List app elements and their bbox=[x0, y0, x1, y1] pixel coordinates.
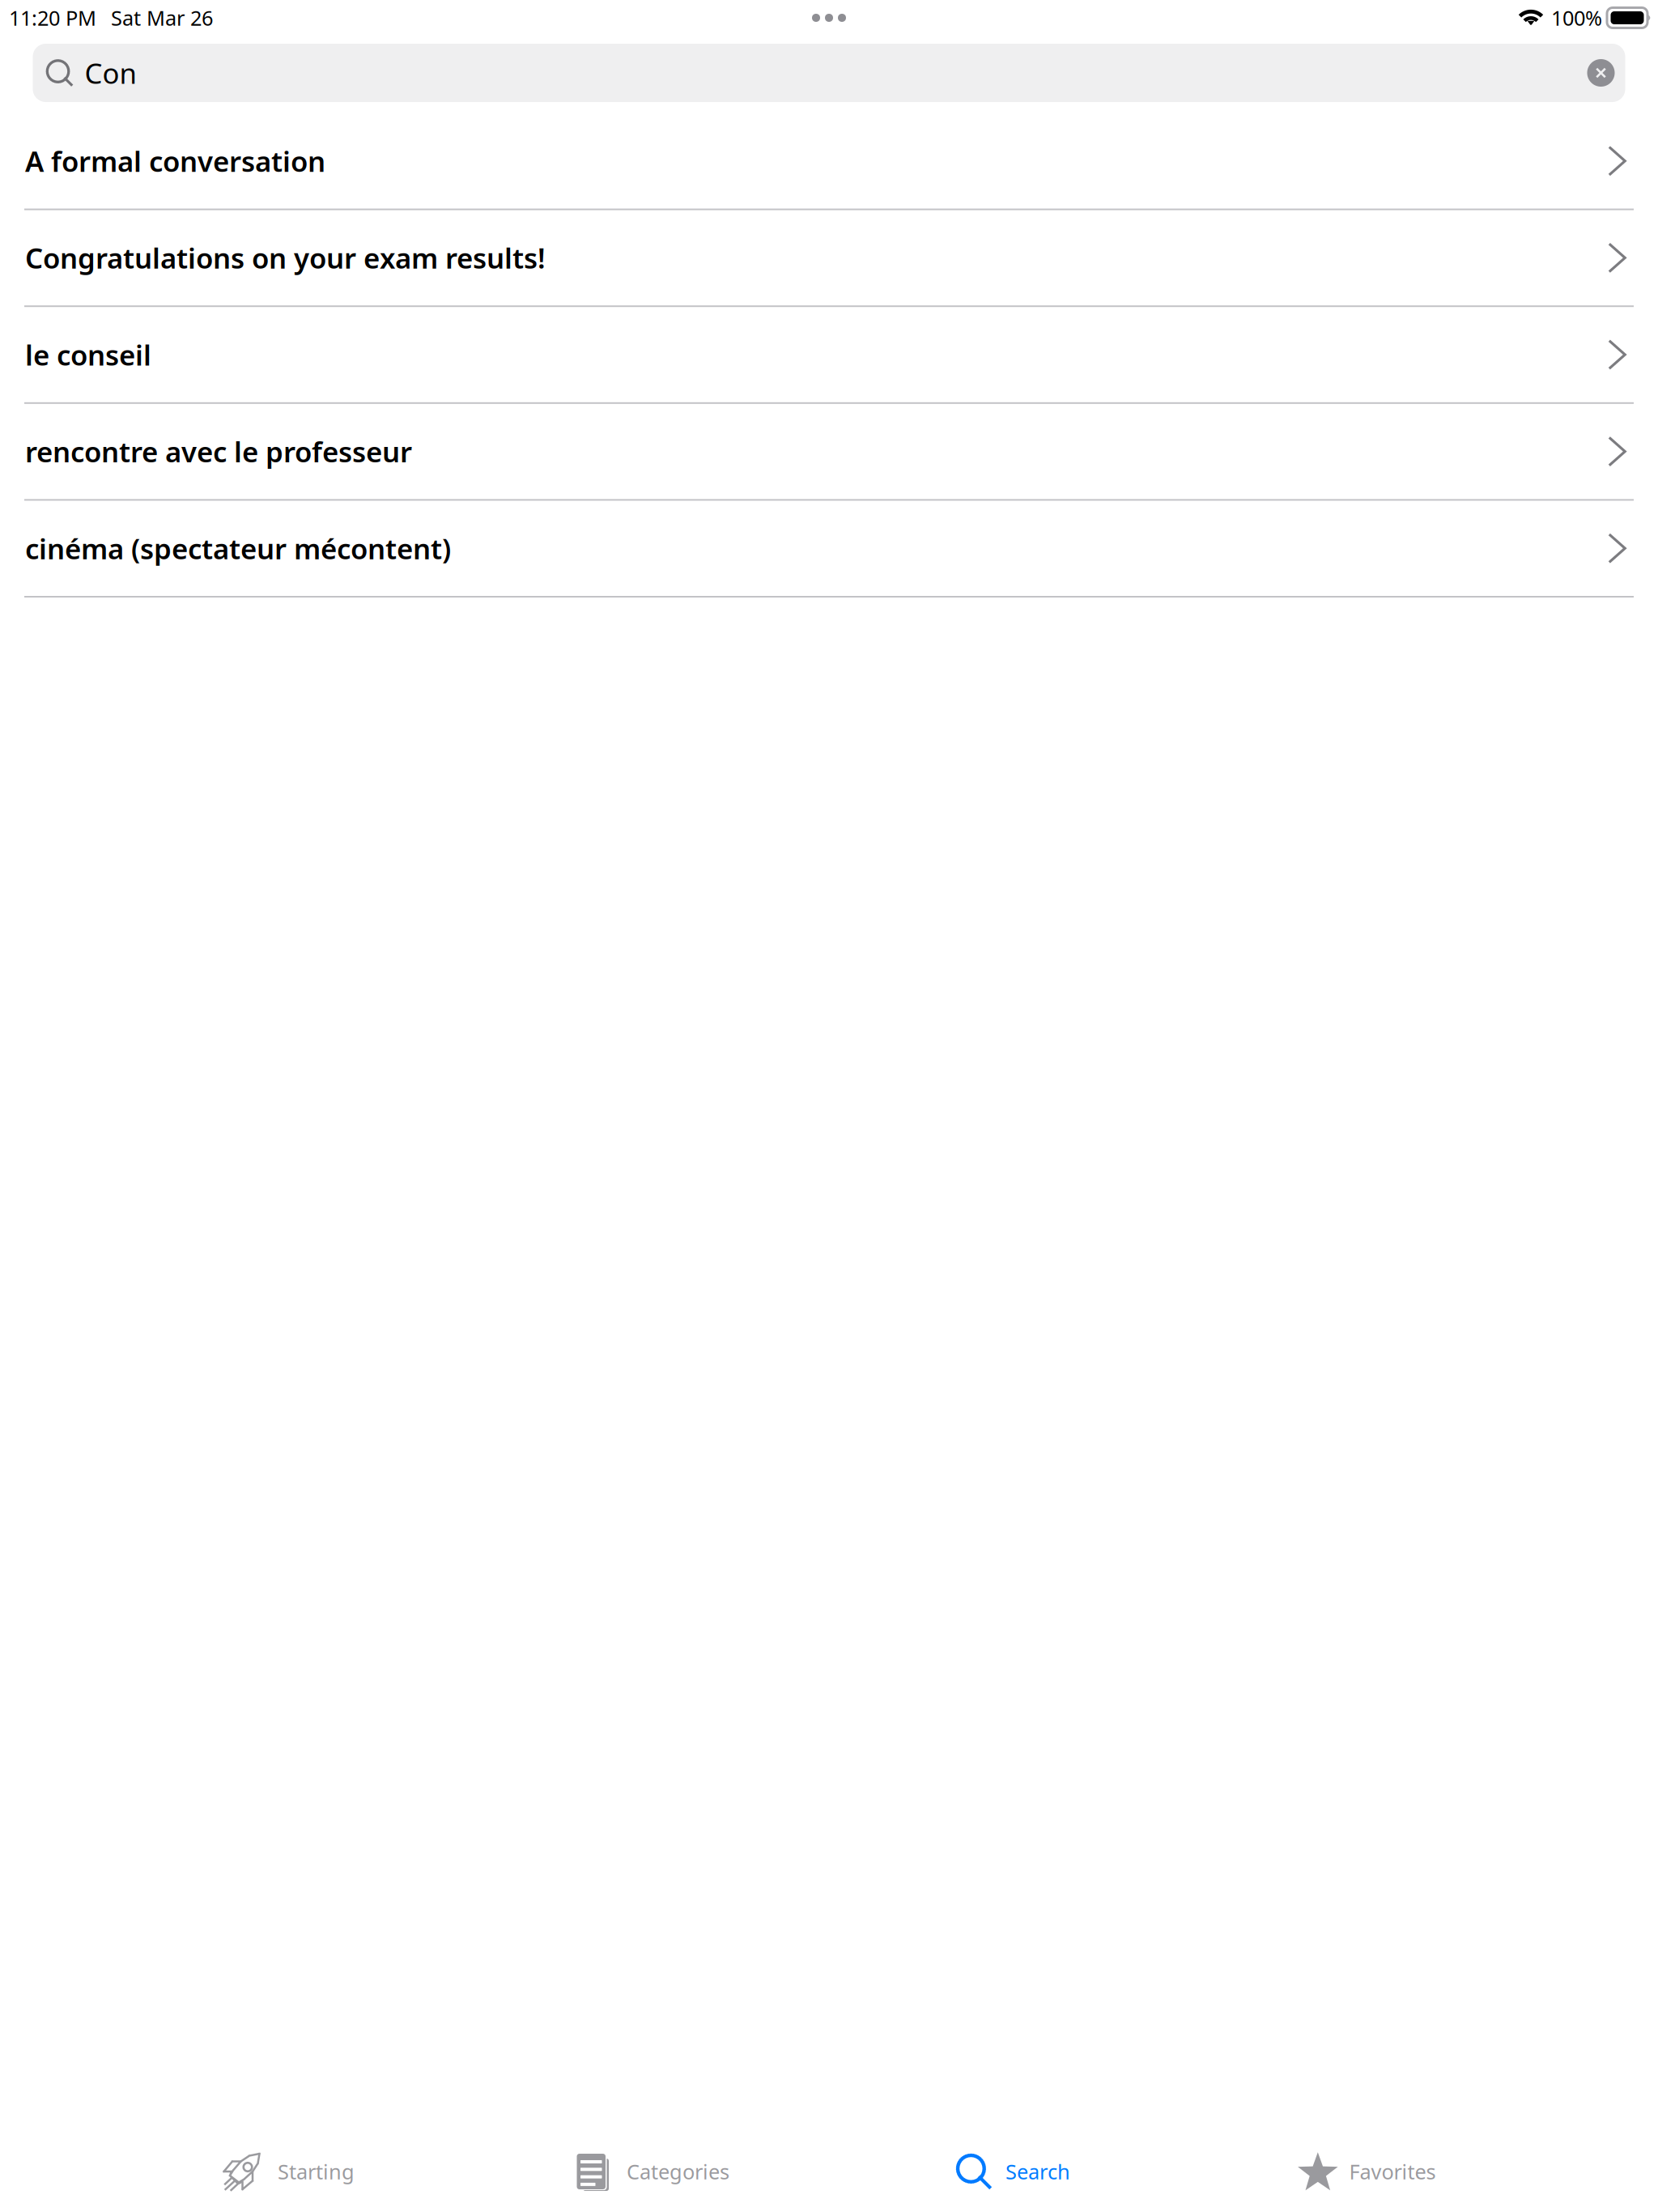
button[interactable]: rencontre avec le professeur bbox=[0, 404, 1658, 501]
button[interactable]: Congratulations on your exam results! bbox=[0, 210, 1658, 307]
staticText: 11:20 PM bbox=[9, 4, 96, 31]
button[interactable]: cinéma (spectateur mécontent) bbox=[0, 501, 1658, 598]
button[interactable]: Favorites bbox=[1188, 2136, 1548, 2207]
staticText: A formal conversation bbox=[25, 142, 325, 180]
button[interactable]: le conseil bbox=[0, 307, 1658, 404]
staticText: Categories bbox=[627, 2158, 729, 2185]
staticText: cinéma (spectateur mécontent) bbox=[25, 530, 451, 567]
button[interactable]: Categories bbox=[470, 2136, 829, 2207]
button[interactable]: Clear text bbox=[1577, 48, 1624, 98]
staticText: Search bbox=[1005, 2158, 1070, 2185]
staticText: Favorites bbox=[1349, 2158, 1436, 2185]
button[interactable]: Con bbox=[33, 44, 1625, 102]
button[interactable]: A formal conversation bbox=[0, 113, 1658, 210]
staticText: le conseil bbox=[25, 336, 151, 373]
button[interactable]: Search bbox=[829, 2136, 1188, 2207]
staticText: 100% bbox=[1551, 4, 1602, 31]
staticText: Sat Mar 26 bbox=[111, 4, 213, 31]
staticText: rencontre avec le professeur bbox=[25, 433, 412, 470]
staticText: Congratulations on your exam results! bbox=[25, 239, 546, 276]
button[interactable]: Starting bbox=[110, 2136, 470, 2207]
staticText: Con bbox=[85, 54, 136, 91]
staticText: Starting bbox=[278, 2158, 355, 2185]
